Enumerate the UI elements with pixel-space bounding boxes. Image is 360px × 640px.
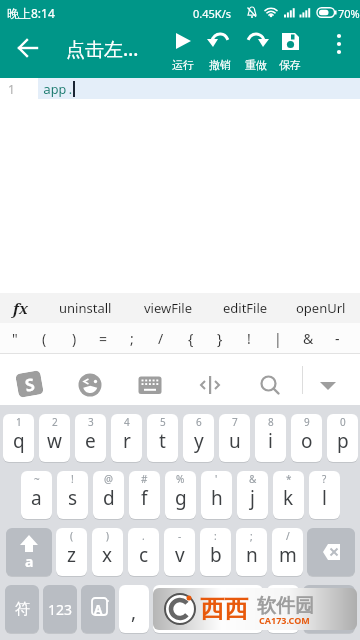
staticText: 123: [48, 600, 73, 619]
staticText: app.: [43, 80, 75, 98]
button[interactable]: ;: [118, 323, 146, 353]
staticText: .: [142, 529, 145, 543]
staticText: fx: [13, 298, 29, 318]
button[interactable]: 9: [291, 414, 322, 462]
staticText: h: [211, 485, 223, 511]
button[interactable]: }: [206, 323, 234, 353]
button[interactable]: S: [15, 370, 44, 398]
button[interactable]: .: [128, 528, 159, 576]
staticText: |: [274, 329, 282, 348]
button[interactable]: ": [1, 323, 29, 353]
staticText: (: [70, 529, 73, 543]
staticText: %: [176, 472, 185, 486]
button[interactable]: ~: [21, 471, 52, 519]
button[interactable]: (: [56, 528, 87, 576]
staticText: k: [283, 485, 294, 511]
button[interactable]: [307, 528, 355, 576]
button[interactable]: -: [323, 323, 351, 353]
button[interactable]: [153, 585, 263, 633]
staticText: p: [337, 428, 349, 454]
button[interactable]: viewFile: [133, 293, 203, 323]
staticText: m: [279, 542, 297, 568]
button[interactable]: [201, 28, 239, 56]
staticText: ": [12, 329, 18, 348]
button[interactable]: :: [200, 528, 231, 576]
button[interactable]: [308, 365, 348, 405]
button[interactable]: ,: [119, 585, 149, 633]
staticText: A: [94, 601, 103, 617]
button[interactable]: {: [177, 323, 205, 353]
staticText: 。: [274, 600, 293, 624]
staticText: r: [123, 428, 131, 454]
button[interactable]: 符: [5, 585, 39, 633]
staticText: !: [247, 329, 251, 348]
button[interactable]: 0: [327, 414, 358, 462]
button[interactable]: [8, 28, 48, 68]
button[interactable]: [237, 28, 275, 56]
button[interactable]: openUrl: [288, 293, 354, 323]
button[interactable]: 123: [43, 585, 77, 633]
staticText: d: [103, 485, 115, 511]
staticText: ': [215, 472, 218, 486]
button[interactable]: !: [235, 323, 263, 353]
staticText: 符: [15, 600, 30, 619]
staticText: n: [246, 542, 258, 568]
button[interactable]: [303, 585, 355, 633]
button[interactable]: 3: [75, 414, 106, 462]
button[interactable]: 6: [183, 414, 214, 462]
staticText: 1: [8, 81, 15, 97]
button[interactable]: &: [294, 323, 322, 353]
button[interactable]: a: [6, 528, 52, 576]
staticText: 软件园: [257, 594, 314, 618]
button[interactable]: (: [30, 323, 58, 353]
staticText: 6: [196, 415, 202, 429]
button[interactable]: [190, 365, 230, 405]
button[interactable]: fx: [6, 293, 36, 323]
button[interactable]: -: [164, 528, 195, 576]
button[interactable]: 2: [39, 414, 70, 462]
staticText: -: [178, 529, 182, 543]
staticText: ~: [34, 472, 40, 486]
button[interactable]: ): [92, 528, 123, 576]
button[interactable]: ;: [236, 528, 267, 576]
button[interactable]: [326, 30, 352, 66]
staticText: c: [139, 542, 149, 568]
button[interactable]: A: [81, 585, 115, 633]
staticText: }: [217, 329, 223, 348]
button[interactable]: !: [57, 471, 88, 519]
staticText: =: [99, 329, 108, 348]
button[interactable]: [130, 365, 170, 405]
button[interactable]: [250, 365, 290, 405]
staticText: @: [104, 472, 113, 486]
button[interactable]: &: [237, 471, 268, 519]
staticText: ?: [322, 472, 327, 486]
button[interactable]: ?: [309, 471, 340, 519]
button[interactable]: |: [264, 323, 292, 353]
button[interactable]: 。: [267, 585, 299, 633]
button[interactable]: 4: [111, 414, 142, 462]
button[interactable]: 5: [147, 414, 178, 462]
staticText: S: [23, 372, 37, 397]
button[interactable]: *: [273, 471, 304, 519]
button[interactable]: #: [129, 471, 160, 519]
button[interactable]: %: [165, 471, 196, 519]
button[interactable]: 8: [255, 414, 286, 462]
button[interactable]: 7: [219, 414, 250, 462]
button[interactable]: ': [201, 471, 232, 519]
staticText: b: [210, 542, 222, 568]
button[interactable]: [271, 28, 309, 56]
button[interactable]: uninstall: [45, 293, 125, 323]
staticText: 重做: [245, 58, 267, 72]
button[interactable]: @: [93, 471, 124, 519]
button[interactable]: ): [60, 323, 88, 353]
button[interactable]: 1: [3, 414, 34, 462]
button[interactable]: [164, 28, 202, 56]
button[interactable]: =: [89, 323, 117, 353]
button[interactable]: /: [272, 528, 303, 576]
staticText: 4: [124, 415, 130, 429]
button[interactable]: editFile: [212, 293, 278, 323]
button[interactable]: [70, 365, 110, 405]
button[interactable]: /: [147, 323, 175, 353]
staticText: x: [102, 542, 113, 568]
staticText: t: [159, 428, 166, 454]
